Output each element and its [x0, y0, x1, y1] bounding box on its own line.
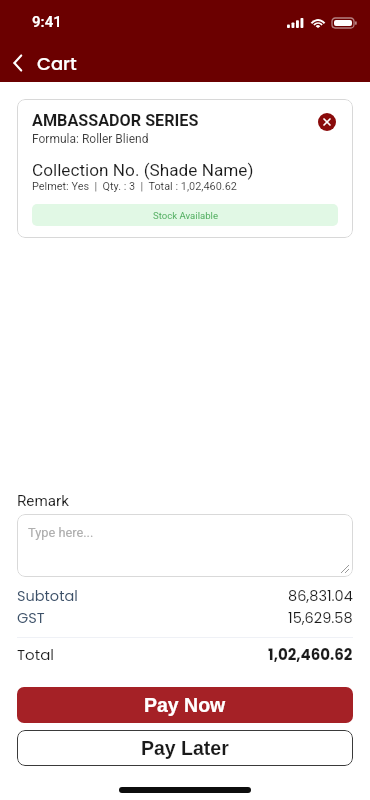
- button[interactable]: Type here...: [17, 514, 353, 577]
- staticText: GST: [17, 608, 45, 628]
- staticText: 86,831.04: [288, 586, 353, 606]
- button[interactable]: Pay Now: [17, 687, 353, 723]
- staticText: Total: [17, 644, 55, 665]
- staticText: AMBASSADOR SERIES: [32, 111, 199, 130]
- staticText: Type here...: [28, 525, 94, 540]
- staticText: 15,629.58: [288, 608, 353, 628]
- button[interactable]: Back: [4, 49, 32, 77]
- staticText: 1,02,460.62: [268, 644, 353, 665]
- staticText: Cart: [37, 51, 77, 76]
- staticText: Pay Later: [141, 737, 229, 759]
- staticText: Formula: Roller Bliend: [32, 132, 149, 146]
- staticText: 9:41: [32, 13, 62, 31]
- button[interactable]: AMBASSADOR SERIES: [17, 99, 353, 238]
- staticText: Pay Now: [144, 694, 226, 716]
- staticText: Stock Available: [153, 210, 218, 221]
- staticText: Collection No. (Shade Name): [32, 160, 254, 180]
- button[interactable]: Remove item: [318, 113, 336, 131]
- staticText: Remark: [17, 492, 69, 510]
- button[interactable]: Pay Later: [17, 730, 353, 766]
- staticText: Pelmet: Yes | Qty. : 3 | Total : 1,02,46…: [32, 180, 237, 193]
- staticText: Subtotal: [17, 586, 78, 606]
